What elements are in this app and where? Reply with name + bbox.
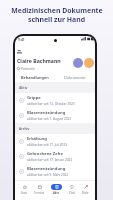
staticText: Blasenentzündung <box>27 110 66 116</box>
button[interactable]: Gebrochene Zehe <box>15 149 95 164</box>
staticText: Erkältung <box>27 136 47 142</box>
staticText: abklaerbar seit 1. August 2023 <box>27 117 72 121</box>
staticText: Medizinischen Dokumente <box>11 6 103 15</box>
button[interactable]: Behandlungen <box>15 75 55 83</box>
staticText: Blasenentzündung <box>27 166 66 172</box>
staticText: Dokumente <box>64 75 86 80</box>
staticText: Chat <box>69 191 75 195</box>
button[interactable]: Grippe <box>15 93 95 108</box>
staticText: abklaerbar seit 13. Oktober 2023 <box>27 102 75 106</box>
button[interactable]: Blasenentzündung <box>15 164 95 179</box>
staticText: 9:41 <box>18 37 25 42</box>
staticText: Gebrochene Zehe <box>27 151 63 157</box>
staticText: Akte <box>53 191 60 195</box>
button[interactable]: Erkältung <box>15 134 95 149</box>
staticText: abklaerbar seit 17. Januar 2023 <box>27 158 72 162</box>
staticText: abklaerbar seit 9. März 2022 <box>27 173 69 177</box>
staticText: Claire Bachmann <box>17 57 61 64</box>
button[interactable]: Chat <box>67 184 76 195</box>
button[interactable]: Start <box>20 184 29 195</box>
button[interactable]: Mehr <box>81 184 90 195</box>
staticText: schnell zur Hand <box>28 15 85 24</box>
staticText: Behandlungen <box>21 75 49 80</box>
staticText: Grippe <box>27 95 41 101</box>
staticText: Start <box>21 191 28 195</box>
button[interactable]: Akte <box>51 184 62 195</box>
staticText: Aktiv <box>19 85 28 90</box>
staticText: Archiv <box>19 126 30 131</box>
staticText: Mehr <box>82 191 89 195</box>
staticText: Patientin <box>21 66 35 70</box>
staticText: Termine <box>34 191 45 195</box>
staticText: abklaerbar seit 17. Juli 2023 <box>27 143 67 147</box>
button[interactable]: Blasenentzündung <box>15 108 95 123</box>
button[interactable]: Termine <box>34 184 45 195</box>
button[interactable]: Dokumente <box>55 75 95 83</box>
